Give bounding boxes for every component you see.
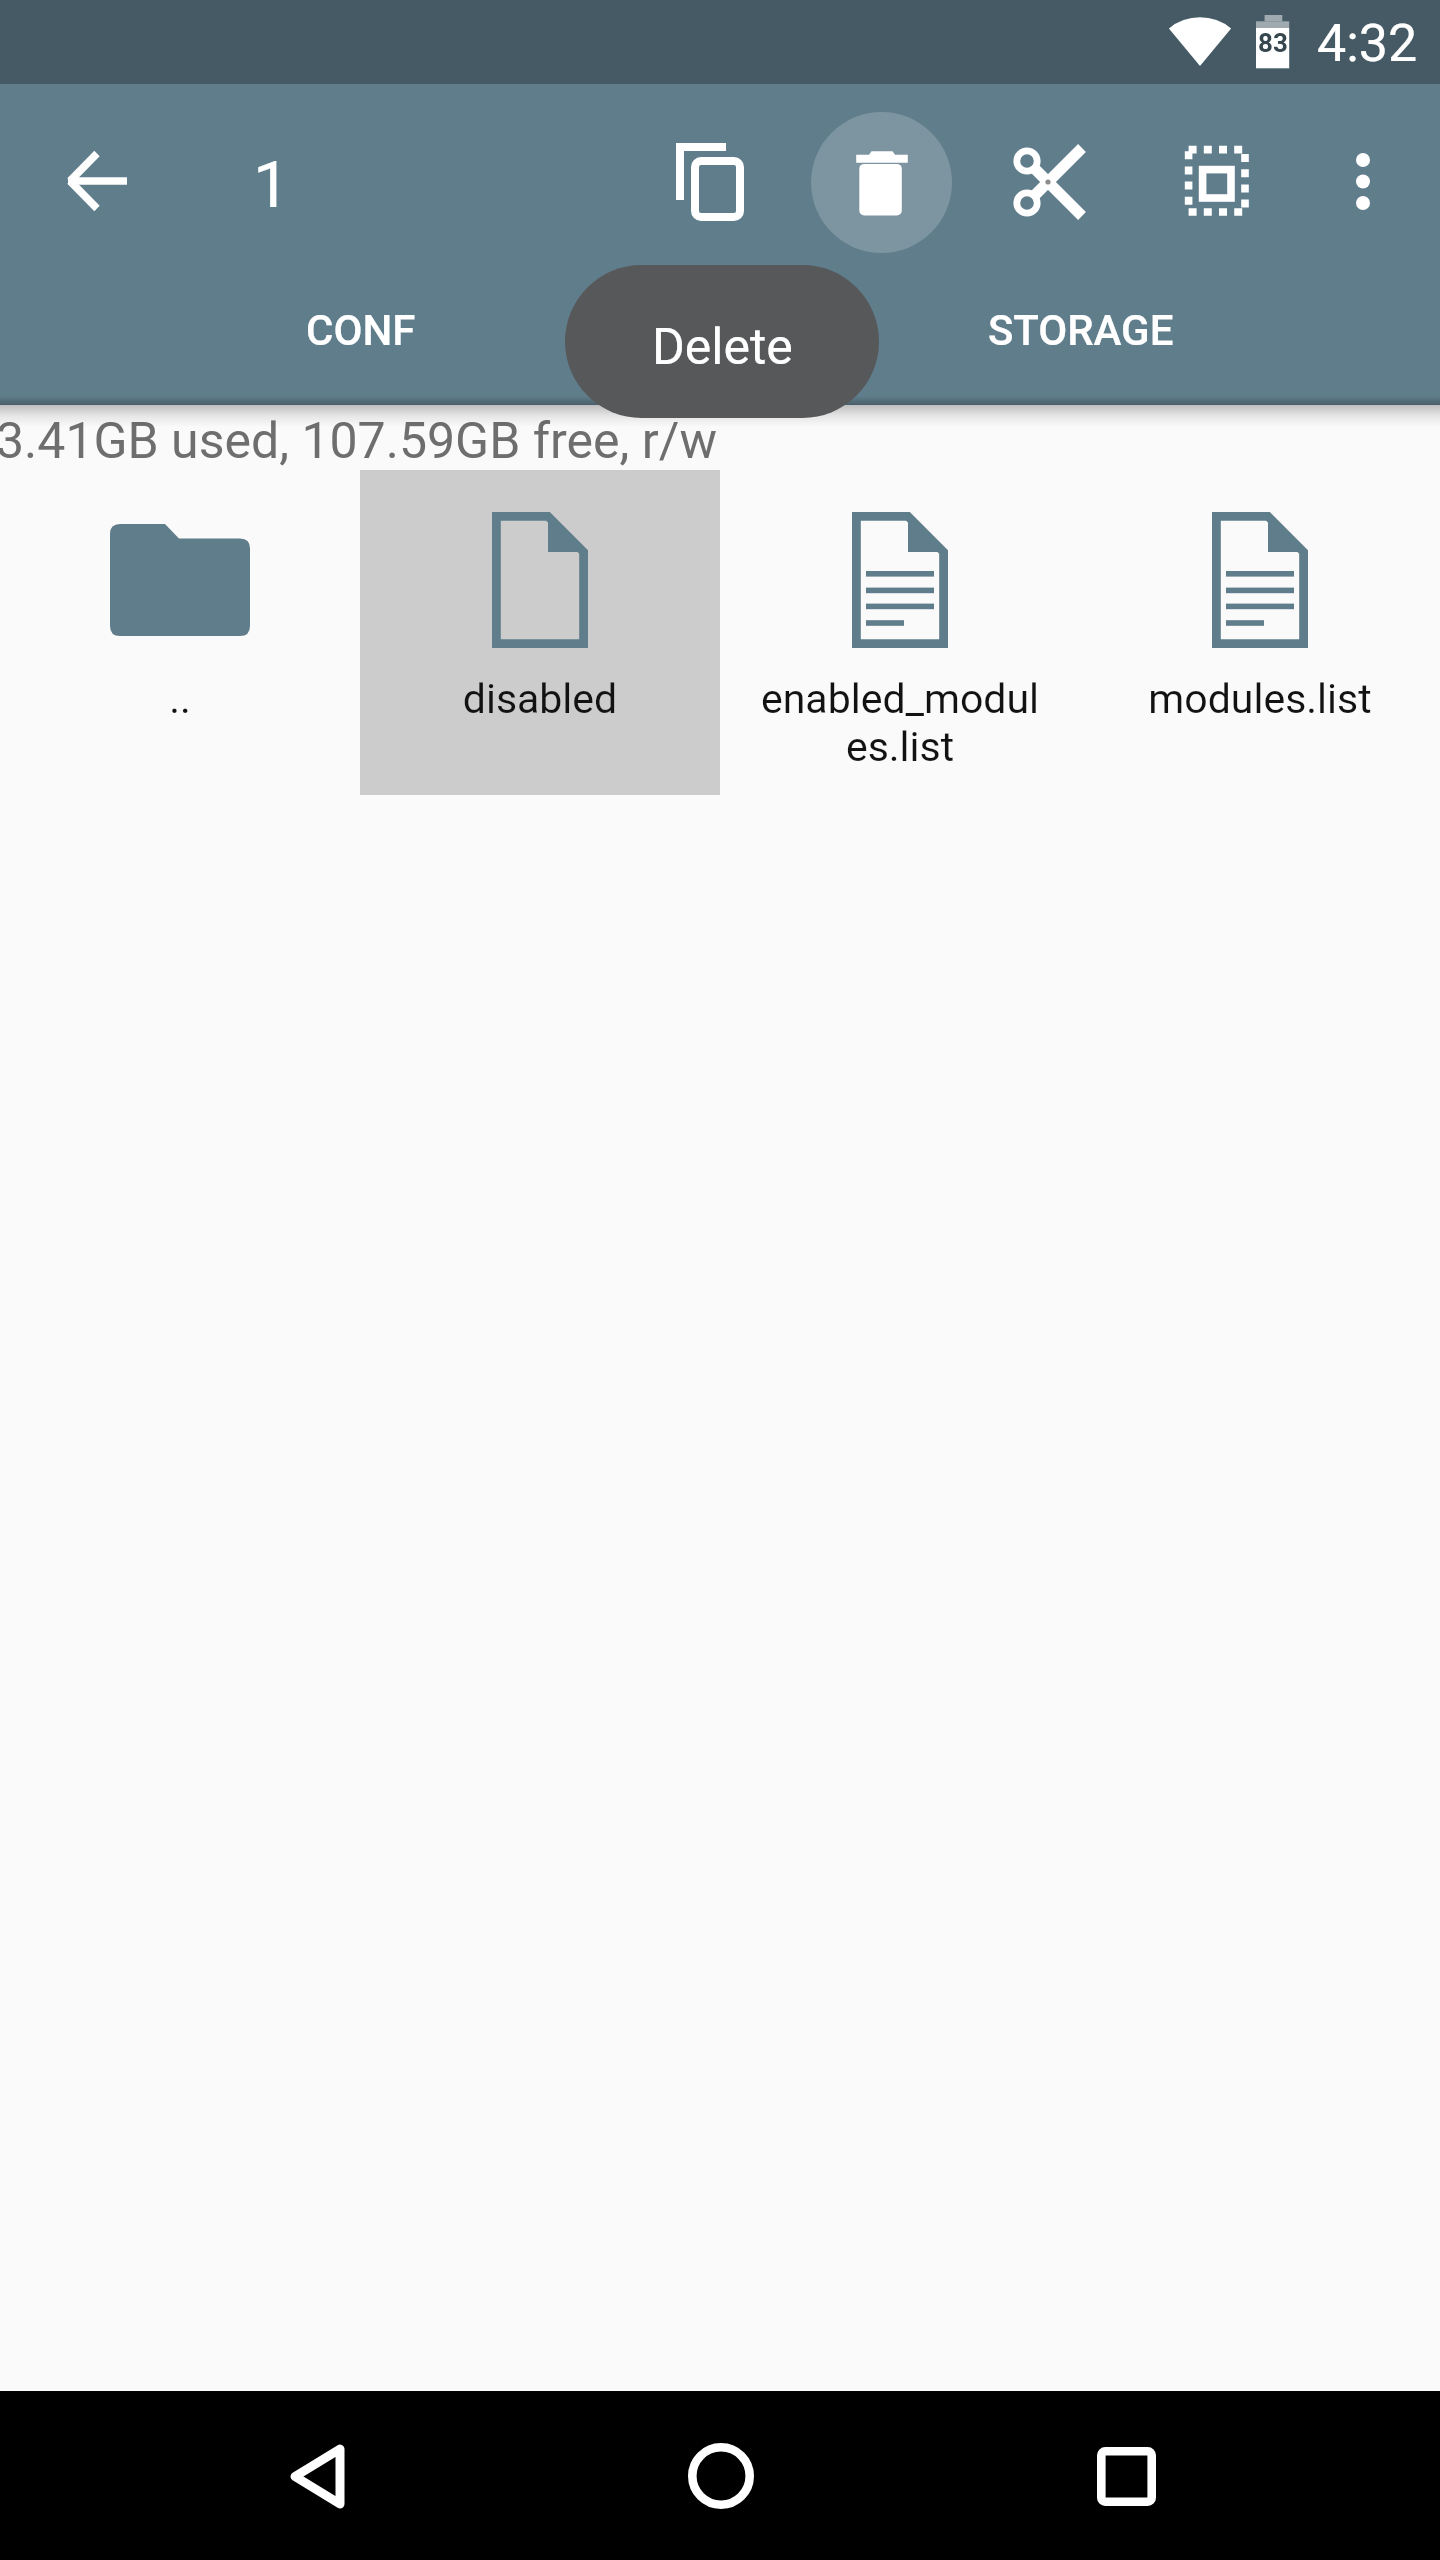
staticText: 1 <box>253 147 290 223</box>
button[interactable]: enabled_modules.list <box>720 470 1080 795</box>
staticText: STORAGE <box>988 306 1174 355</box>
button[interactable]: modules.list <box>1080 470 1440 795</box>
button[interactable]: MODULES <box>541 260 901 400</box>
staticText: enabled_modules.list <box>755 675 1045 771</box>
button[interactable]: More options <box>1321 139 1405 223</box>
staticText: 83 <box>1258 28 1288 54</box>
staticText: modules.list <box>1115 675 1405 723</box>
button[interactable]: Back <box>250 2428 385 2524</box>
button[interactable]: Cut <box>1006 140 1090 224</box>
button[interactable]: disabled <box>360 470 720 795</box>
button[interactable]: Home <box>653 2428 788 2524</box>
button[interactable]: .. <box>0 470 360 795</box>
button[interactable]: Copy <box>668 140 752 224</box>
button[interactable]: Select all <box>1171 135 1255 219</box>
staticText: 4:32 <box>1317 13 1418 74</box>
staticText: CONF <box>306 306 416 355</box>
staticText: disabled <box>395 675 685 723</box>
staticText: Delete <box>652 318 793 377</box>
button[interactable]: Back <box>55 139 139 223</box>
staticText: .. <box>35 675 325 723</box>
staticText: MODULES <box>625 306 818 355</box>
button[interactable]: CONF <box>181 260 541 400</box>
button[interactable]: STORAGE <box>901 260 1261 400</box>
staticText: 3.41GB used, 107.59GB free, r/w <box>0 412 717 471</box>
button[interactable]: Recent apps <box>1059 2428 1194 2524</box>
button[interactable]: Delete <box>811 112 952 253</box>
